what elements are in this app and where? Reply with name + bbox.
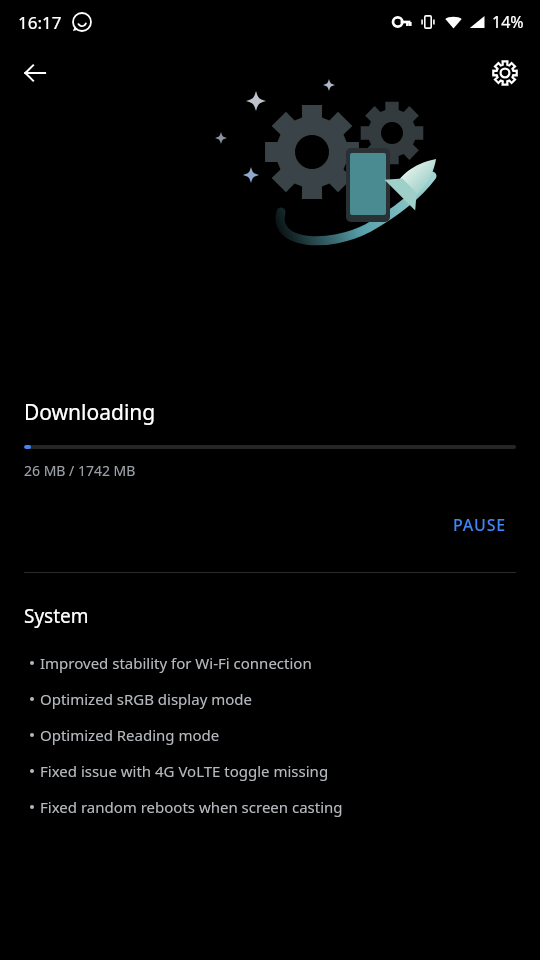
staticText: 16:17 [18,11,62,34]
staticText: Fixed random reboots when screen casting [40,797,343,817]
staticText: Optimized sRGB display mode [40,689,252,709]
staticText: Downloading [24,398,156,427]
staticText: Fixed issue with 4G VoLTE toggle missing [40,761,329,781]
button[interactable]: PAUSE [443,506,516,544]
button[interactable]: Back [12,50,58,96]
button[interactable]: Settings [482,50,528,96]
staticText: 26 MB / 1742 MB [24,461,136,480]
staticText: Optimized Reading mode [40,725,220,745]
staticText: Improved stability for Wi-Fi connection [40,653,312,673]
staticText: PAUSE [453,514,506,536]
staticText: 14% [492,11,524,33]
staticText: System [24,603,89,629]
